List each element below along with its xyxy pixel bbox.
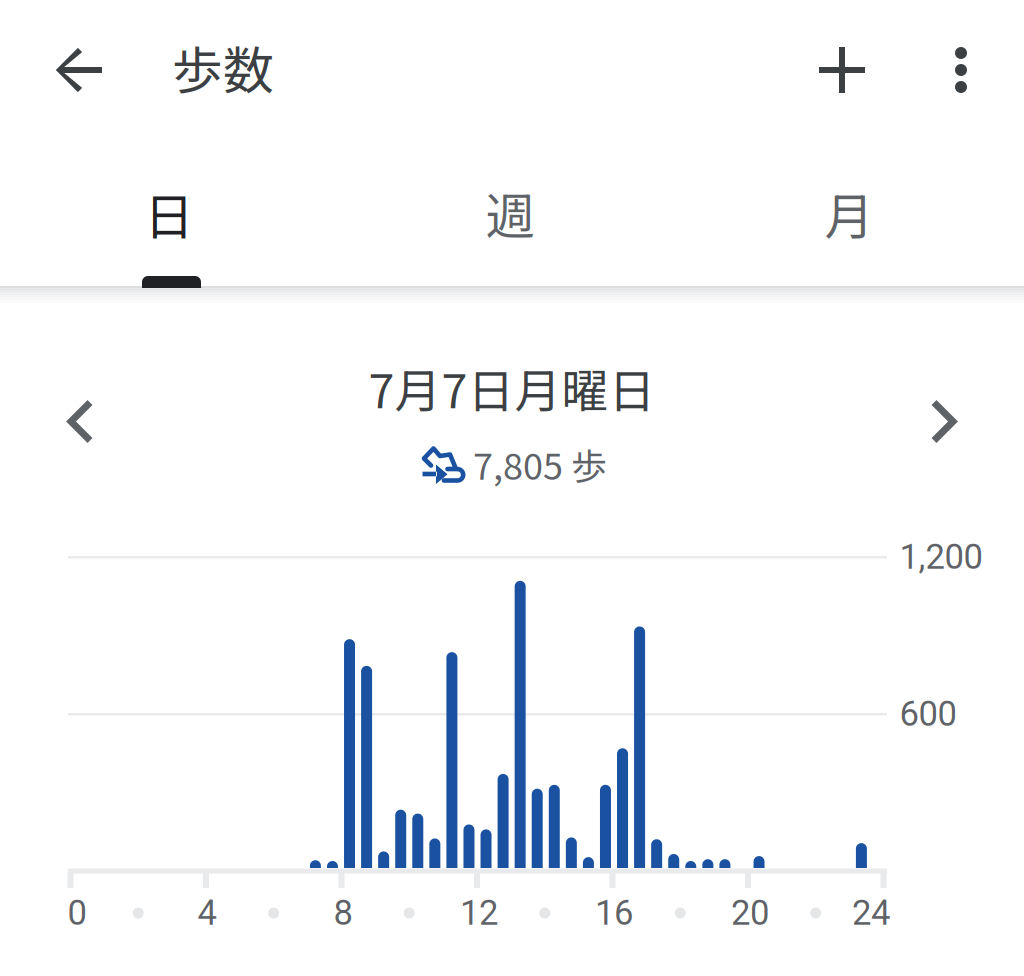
- staticText: 週: [485, 177, 534, 249]
- staticText: 16: [595, 893, 633, 933]
- staticText: 0: [67, 893, 86, 933]
- button[interactable]: 前の日: [35, 371, 125, 471]
- button[interactable]: 追加: [794, 22, 890, 118]
- staticText: 歩数: [172, 30, 274, 104]
- staticText: 日: [144, 177, 193, 249]
- staticText: 20: [731, 893, 769, 933]
- button[interactable]: 次の日: [899, 371, 989, 471]
- staticText: 24: [852, 893, 890, 933]
- staticText: 600: [899, 694, 956, 734]
- staticText: 4: [197, 893, 216, 933]
- button[interactable]: 戻る: [31, 22, 127, 118]
- staticText: 7月7日月曜日: [368, 354, 655, 422]
- button[interactable]: 週: [339, 144, 680, 281]
- staticText: 月: [824, 177, 873, 249]
- button[interactable]: 日: [0, 144, 339, 281]
- staticText: 12: [460, 893, 498, 933]
- staticText: 8: [333, 893, 352, 933]
- button[interactable]: その他のオプション: [913, 22, 1009, 118]
- staticText: 1,200: [899, 537, 982, 577]
- staticText: 7,805 歩: [473, 438, 607, 490]
- button[interactable]: 月: [678, 144, 1019, 281]
